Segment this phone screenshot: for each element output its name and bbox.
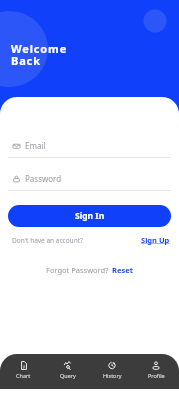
button[interactable]: Sign Up [141,235,170,245]
staticText: History [103,372,122,379]
button[interactable]: Reset [112,265,133,275]
staticText: Welcome Back [11,41,68,68]
button[interactable]: Sign In [8,205,171,227]
button[interactable]: Password [0,173,179,191]
staticText: Don't have an account? [12,236,83,245]
staticText: Forgot Password? [46,265,109,275]
button[interactable]: Query [46,354,90,389]
staticText: Password [25,173,62,184]
staticText: Sign In [75,210,105,222]
staticText: Chart [16,372,31,379]
staticText: Sign Up [141,235,170,245]
button[interactable]: Profile [134,354,178,389]
button[interactable]: Email [0,140,179,158]
staticText: Query [60,372,76,379]
staticText: Profile [148,372,165,379]
button[interactable]: Chart [1,354,46,389]
button[interactable]: History [90,354,134,389]
staticText: Reset [112,265,133,275]
staticText: Email [25,140,46,151]
